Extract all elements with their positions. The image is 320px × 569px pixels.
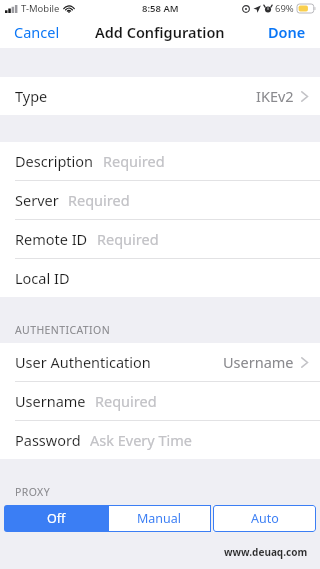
staticText: Remote ID (15, 229, 88, 249)
staticText: PROXY (15, 485, 50, 499)
staticText: www.deuaq.com (224, 545, 308, 559)
button[interactable]: Description (0, 142, 320, 180)
staticText: Local ID (15, 268, 70, 288)
staticText: Done (268, 22, 306, 42)
staticText: T-Mobile (21, 2, 60, 15)
staticText: Ask Every Time (90, 430, 193, 450)
staticText: Server (15, 190, 59, 210)
staticText: Required (68, 190, 130, 210)
staticText: Required (103, 151, 165, 171)
staticText: Type (15, 86, 48, 106)
button[interactable]: Cancel (0, 16, 74, 48)
button[interactable]: Off (4, 505, 108, 532)
button[interactable]: Done (254, 16, 320, 48)
staticText: Add Configuration (95, 22, 225, 42)
staticText: Username (15, 391, 86, 411)
staticText: Off (47, 510, 66, 527)
button[interactable]: Username (0, 382, 320, 420)
button[interactable]: Server (0, 181, 320, 219)
staticText: AUTHENTICATION (15, 323, 111, 337)
staticText: Password (15, 430, 81, 450)
button[interactable]: Type (0, 77, 320, 115)
staticText: Username (223, 352, 294, 372)
staticText: Cancel (14, 22, 60, 42)
button[interactable]: Local ID (0, 259, 320, 297)
staticText: 69% (275, 2, 294, 15)
staticText: Required (97, 229, 159, 249)
staticText: Description (15, 151, 94, 171)
staticText: 8:58 AM (142, 2, 179, 15)
staticText: Auto (251, 510, 279, 527)
staticText: User Authentication (15, 352, 151, 372)
staticText: Required (95, 391, 157, 411)
button[interactable]: User Authentication (0, 343, 320, 381)
button[interactable]: Remote ID (0, 220, 320, 258)
button[interactable]: Manual (108, 505, 211, 532)
staticText: Manual (137, 510, 182, 527)
button[interactable]: Auto (213, 505, 316, 532)
staticText: IKEv2 (256, 86, 294, 106)
button[interactable]: Password (0, 421, 320, 459)
